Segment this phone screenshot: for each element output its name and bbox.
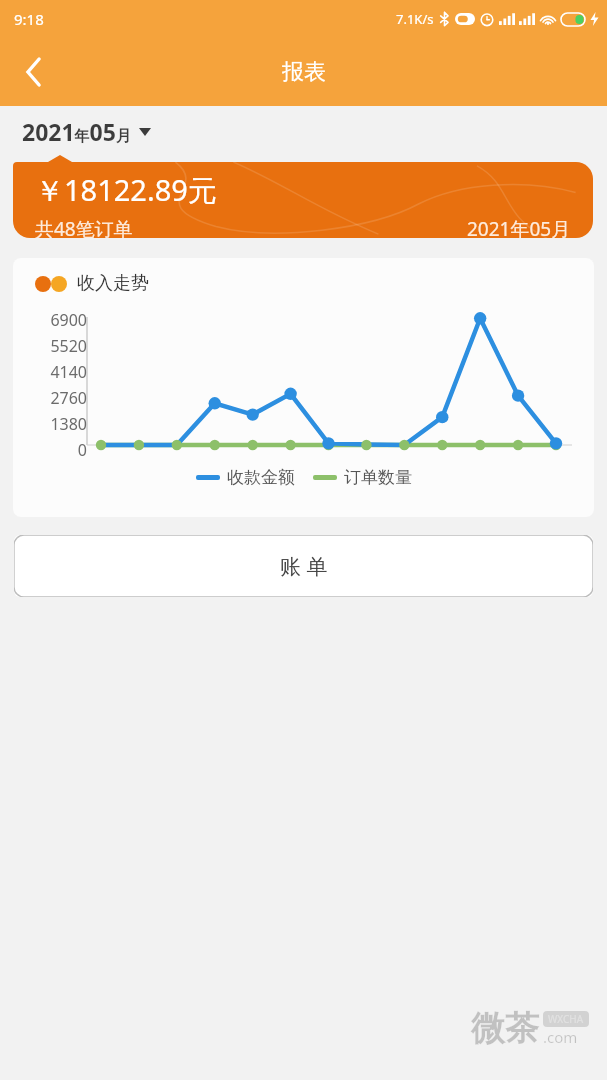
staticText: 4140 bbox=[50, 361, 87, 381]
staticText: 收款金额 bbox=[227, 467, 295, 488]
staticText: 2760 bbox=[50, 387, 87, 407]
staticText: .com bbox=[543, 1027, 578, 1047]
staticText: 微茶 bbox=[471, 1007, 539, 1050]
staticText: ￥18122.89元 bbox=[35, 170, 217, 210]
staticText: 订单数量 bbox=[344, 467, 412, 488]
staticText: 9:18 bbox=[14, 9, 44, 29]
staticText: 2021年05月 bbox=[22, 116, 131, 147]
button[interactable]: 账 单 bbox=[14, 535, 593, 597]
button[interactable]: ￥18122.89元 bbox=[13, 162, 593, 238]
staticText: 共48笔订单 bbox=[35, 216, 133, 238]
staticText: 6900 bbox=[50, 309, 87, 329]
staticText: 0 bbox=[77, 439, 87, 459]
staticText: 5520 bbox=[50, 335, 87, 355]
staticText: 账 单 bbox=[280, 552, 328, 581]
staticText: WXCHA bbox=[548, 1012, 584, 1026]
staticText: 收入走势 bbox=[77, 272, 149, 295]
staticText: 7.1K/s bbox=[396, 10, 434, 28]
staticText: 1380 bbox=[50, 413, 87, 433]
staticText: 2021年05月 bbox=[467, 216, 571, 238]
button[interactable]: Back bbox=[10, 48, 58, 96]
staticText: 报表 bbox=[282, 58, 326, 86]
button[interactable]: 2021年05月 bbox=[22, 116, 151, 147]
